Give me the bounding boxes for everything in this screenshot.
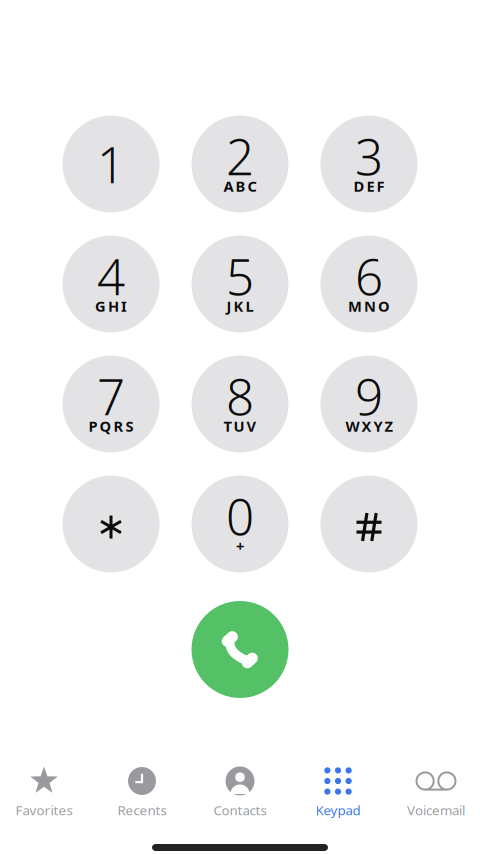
button[interactable]: Contacts [191, 765, 289, 818]
staticText: D E F [353, 176, 384, 196]
button[interactable]: Star [46, 464, 175, 584]
button[interactable]: 6 [304, 224, 433, 344]
staticText: 8 [226, 363, 254, 429]
staticText: Contacts [213, 801, 266, 819]
staticText: G H I [95, 296, 127, 316]
button[interactable]: Recents [93, 765, 191, 818]
staticText: Voicemail [407, 801, 465, 819]
staticText: W X Y Z [345, 416, 392, 436]
button[interactable]: Pound [304, 464, 433, 584]
staticText: + [236, 536, 244, 556]
button[interactable]: 2 [175, 104, 304, 224]
button[interactable]: 5 [175, 224, 304, 344]
staticText: A B C [223, 176, 256, 196]
staticText: Recents [117, 801, 166, 819]
button[interactable]: 9 [304, 344, 433, 464]
staticText: 9 [355, 363, 383, 429]
staticText: 2 [226, 123, 254, 189]
button[interactable]: Call [191, 601, 288, 698]
staticText: 1 [97, 131, 125, 197]
button[interactable]: 8 [175, 344, 304, 464]
staticText: 3 [355, 123, 383, 189]
button[interactable]: 7 [46, 344, 175, 464]
staticText: P Q R S [88, 416, 133, 436]
staticText: J K L [226, 296, 253, 316]
button[interactable]: Keypad [289, 765, 387, 818]
button[interactable]: 0 [175, 464, 304, 584]
staticText: 5 [226, 243, 254, 309]
staticText: Keypad [315, 801, 360, 819]
button[interactable]: 3 [304, 104, 433, 224]
staticText: M N O [348, 296, 390, 316]
staticText: 6 [355, 243, 383, 309]
staticText: 4 [97, 243, 125, 309]
button[interactable]: Voicemail [387, 765, 480, 818]
staticText: 7 [97, 363, 125, 429]
button[interactable]: Favorites [0, 765, 93, 818]
staticText: 0 [226, 483, 254, 549]
staticText: T U V [223, 416, 256, 436]
button[interactable]: 4 [46, 224, 175, 344]
button[interactable]: 1 [46, 104, 175, 224]
staticText: Favorites [15, 801, 72, 819]
